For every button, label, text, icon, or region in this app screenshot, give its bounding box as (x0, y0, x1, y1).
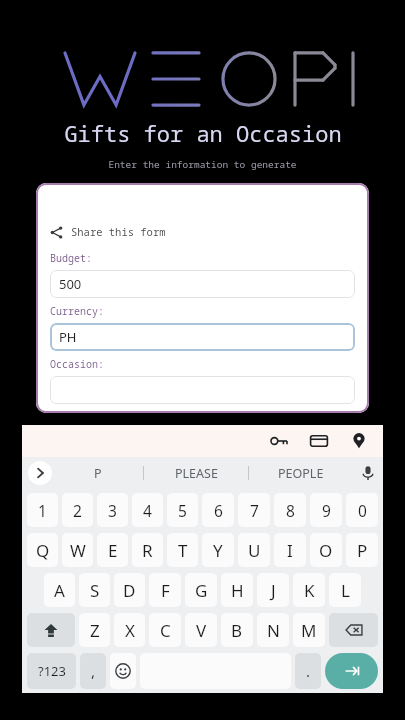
staticText: , (91, 661, 96, 681)
staticText: 8 (286, 500, 295, 521)
staticText: ?123 (38, 662, 66, 680)
staticText: Currency: (50, 304, 104, 318)
staticText: X (125, 619, 135, 642)
button[interactable]: 2 (62, 493, 93, 527)
button[interactable]: Voice input (353, 457, 383, 489)
button[interactable]: 1 (27, 493, 58, 527)
button[interactable]: U (238, 533, 270, 567)
button[interactable]: Shift (27, 613, 75, 647)
button[interactable]: ?123 (27, 653, 76, 689)
staticText: V (196, 619, 207, 642)
button[interactable]: M (293, 613, 325, 647)
button[interactable]: 4 (132, 493, 163, 527)
button[interactable]: V (185, 613, 217, 647)
button[interactable]: E (97, 533, 128, 567)
button[interactable]: PEOPLE (249, 457, 353, 489)
button[interactable]: O (310, 533, 342, 567)
staticText: 5 (178, 500, 187, 521)
button[interactable]: L (329, 573, 361, 607)
staticText: A (54, 579, 65, 602)
button[interactable]: H (221, 573, 253, 607)
staticText: D (123, 579, 136, 602)
button[interactable]: Passwords (269, 431, 289, 451)
staticText: N (267, 619, 280, 642)
staticText: H (231, 579, 244, 602)
staticText: PEOPLE (278, 465, 324, 482)
staticText: . (306, 661, 311, 681)
staticText: M (301, 619, 317, 642)
button[interactable]: 5 (167, 493, 198, 527)
staticText: E (108, 539, 118, 562)
button[interactable]: Emoji (110, 653, 136, 689)
staticText: S (90, 579, 100, 602)
button[interactable]: N (257, 613, 289, 647)
button[interactable]: I (274, 533, 306, 567)
staticText: Share this form (71, 225, 166, 239)
button[interactable]: C (149, 613, 181, 647)
button[interactable]: Q (27, 533, 58, 567)
button[interactable]: 6 (202, 493, 234, 527)
button[interactable]: Share (50, 223, 166, 241)
staticText: 2 (73, 500, 82, 521)
staticText: 4 (143, 500, 152, 521)
button[interactable]: 500 (50, 270, 355, 298)
button[interactable]: 0 (346, 493, 378, 527)
staticText: O (319, 539, 333, 562)
staticText: Q (36, 539, 50, 562)
staticText: PH (59, 328, 77, 346)
staticText: W (70, 539, 86, 562)
button[interactable]: PLEASE (144, 457, 248, 489)
button[interactable]: R (132, 533, 163, 567)
staticText: 500 (59, 275, 82, 293)
button[interactable]: A (44, 573, 75, 607)
staticText: P (357, 539, 368, 562)
button[interactable]: P (52, 457, 143, 489)
button[interactable]: X (114, 613, 145, 647)
button[interactable]: Addresses (349, 431, 369, 451)
staticText: C (160, 619, 171, 642)
button[interactable]: Backspace (329, 613, 378, 647)
button[interactable]: 3 (97, 493, 128, 527)
button[interactable]: 7 (238, 493, 270, 527)
staticText: U (248, 539, 261, 562)
staticText: 3 (108, 500, 117, 521)
button[interactable]: PH (50, 323, 355, 351)
button[interactable]: P (346, 533, 378, 567)
staticText: 0 (358, 500, 367, 521)
staticText: L (341, 579, 350, 602)
button[interactable]: Z (79, 613, 110, 647)
button[interactable]: 8 (274, 493, 306, 527)
button[interactable]: G (185, 573, 217, 607)
button[interactable]: . (295, 653, 321, 689)
staticText: 1 (38, 500, 47, 521)
button[interactable]: Expand toolbar (28, 461, 52, 485)
staticText: 6 (214, 500, 223, 521)
staticText: Occasion: (50, 357, 104, 371)
button[interactable]: W (62, 533, 93, 567)
staticText: I (287, 539, 293, 562)
button[interactable]: T (167, 533, 198, 567)
staticText: 7 (250, 500, 259, 521)
button[interactable]: Payment cards (309, 431, 329, 451)
staticText: P (94, 465, 102, 482)
staticText: Y (213, 539, 223, 562)
button[interactable]: 9 (310, 493, 342, 527)
button[interactable]: , (80, 653, 106, 689)
staticText: R (142, 539, 153, 562)
button[interactable]: F (149, 573, 181, 607)
staticText: Z (90, 619, 100, 642)
button[interactable] (50, 376, 355, 404)
button[interactable]: Y (202, 533, 234, 567)
button[interactable]: Enter (325, 653, 378, 689)
button[interactable]: J (257, 573, 289, 607)
staticText: G (195, 579, 208, 602)
staticText: Budget: (50, 251, 92, 265)
other: Share (50, 226, 63, 239)
staticText: Gifts for an Occasion (64, 118, 342, 148)
button[interactable]: K (293, 573, 325, 607)
button[interactable]: D (114, 573, 145, 607)
staticText: F (161, 579, 170, 602)
button[interactable]: S (79, 573, 110, 607)
button[interactable]: B (221, 613, 253, 647)
